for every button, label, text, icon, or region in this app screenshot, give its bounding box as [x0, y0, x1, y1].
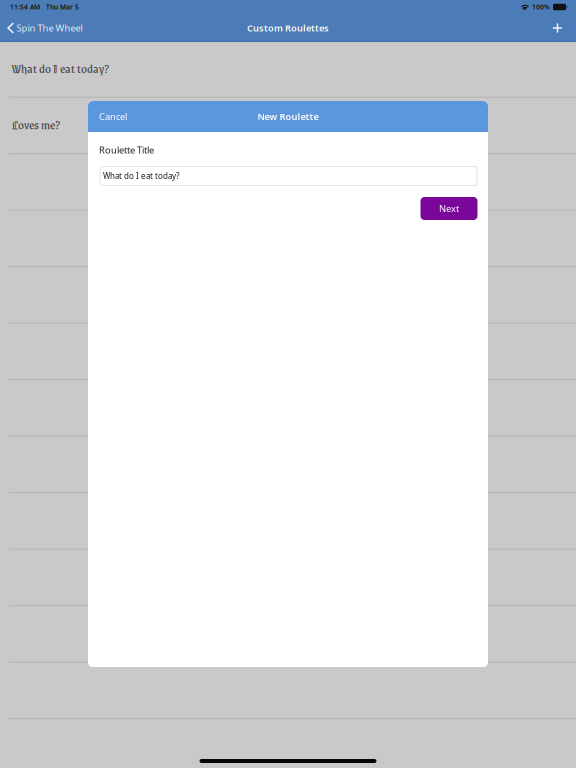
staticText: 11:54 AM — [10, 3, 40, 11]
staticText: Spin The Wheel — [16, 22, 82, 34]
staticText: Thu Mar 5 — [46, 3, 79, 11]
staticText: New Roulette — [257, 110, 318, 123]
button[interactable]: Cancel — [88, 101, 136, 132]
staticText: Cancel — [99, 110, 127, 123]
staticText: Loves me? — [12, 114, 60, 134]
button[interactable]: Spin The Wheel — [0, 14, 88, 42]
staticText: Custom Roulettes — [247, 22, 329, 34]
staticText: Roulette Title — [99, 144, 154, 156]
staticText: 100% — [532, 3, 550, 11]
button[interactable]: Add roulette — [543, 14, 571, 42]
staticText: What do I eat today? — [103, 171, 179, 181]
staticText: What do I eat today? — [12, 58, 109, 78]
staticText: Next — [439, 202, 459, 215]
button[interactable]: Next — [420, 197, 477, 220]
